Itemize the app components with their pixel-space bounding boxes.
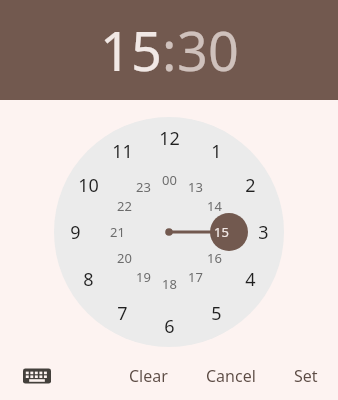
staticText: 18 — [162, 275, 177, 293]
button[interactable]: 22 — [107, 194, 141, 218]
button[interactable]: 1 — [199, 139, 233, 163]
button[interactable]: 00 — [152, 168, 186, 192]
staticText: 9 — [70, 220, 81, 244]
button[interactable]: 13 — [178, 175, 212, 199]
button[interactable]: 3 — [246, 220, 280, 244]
button[interactable]: 15 — [204, 220, 238, 244]
staticText: 20 — [117, 249, 132, 267]
button[interactable]: 16 — [197, 246, 231, 270]
staticText: 10 — [78, 173, 99, 197]
staticText: 13 — [188, 178, 203, 196]
staticText: 17 — [188, 268, 203, 286]
staticText: 23 — [136, 178, 151, 196]
button[interactable]: Set — [288, 359, 324, 393]
button[interactable]: 21 — [100, 220, 134, 244]
staticText: 21 — [110, 223, 125, 241]
staticText: 3 — [258, 220, 269, 244]
staticText: 00 — [162, 171, 177, 189]
staticText: 11 — [112, 139, 133, 163]
button[interactable]: 17 — [178, 265, 212, 289]
button[interactable]: 6 — [152, 314, 186, 338]
staticText: Set — [294, 365, 318, 387]
staticText: 6 — [164, 314, 175, 338]
button[interactable]: 14 — [197, 194, 231, 218]
staticText: 2 — [245, 173, 256, 197]
button[interactable]: 11 — [105, 139, 139, 163]
staticText: 15 — [214, 223, 229, 241]
staticText: 12 — [159, 126, 180, 150]
button[interactable]: 7 — [105, 301, 139, 325]
button[interactable]: 15 — [100, 13, 162, 87]
staticText: 5 — [211, 301, 222, 325]
staticText: 7 — [117, 301, 128, 325]
button[interactable]: 5 — [199, 301, 233, 325]
staticText: 22 — [117, 197, 132, 215]
button[interactable]: 19 — [126, 265, 160, 289]
button[interactable]: 10 — [71, 173, 105, 197]
staticText: Clear — [129, 365, 168, 387]
button[interactable]: 9 — [58, 220, 92, 244]
button[interactable]: Switch to text input — [22, 364, 52, 388]
staticText: : — [162, 13, 177, 87]
button[interactable]: 30 — [177, 13, 239, 87]
button[interactable]: 8 — [71, 267, 105, 291]
button[interactable]: Clear — [123, 359, 174, 393]
button[interactable]: 23 — [126, 175, 160, 199]
staticText: 1 — [211, 139, 222, 163]
button[interactable]: 20 — [107, 246, 141, 270]
button[interactable]: 4 — [233, 267, 267, 291]
button[interactable]: 18 — [152, 272, 186, 296]
button[interactable]: 12 — [152, 126, 186, 150]
staticText: 8 — [83, 267, 94, 291]
staticText: 14 — [207, 197, 222, 215]
staticText: 4 — [245, 267, 256, 291]
button[interactable]: 2 — [233, 173, 267, 197]
button[interactable]: Cancel — [200, 359, 262, 393]
staticText: 19 — [136, 268, 151, 286]
staticText: 16 — [207, 249, 222, 267]
staticText: Cancel — [206, 365, 256, 387]
